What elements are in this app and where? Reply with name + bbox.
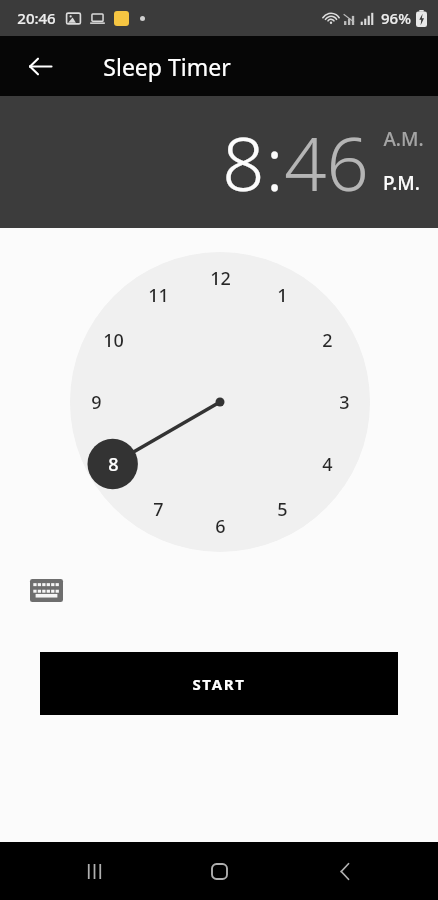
staticText: START: [192, 674, 246, 694]
staticText: 2: [322, 328, 333, 353]
staticText: 8: [222, 112, 265, 213]
staticText: 6: [215, 514, 226, 539]
button[interactable]: Home: [187, 842, 251, 900]
staticText: 8: [108, 452, 119, 477]
staticText: P.M.: [383, 170, 420, 196]
staticText: :: [265, 112, 284, 213]
button[interactable]: P.M.: [382, 167, 421, 199]
staticText: 11: [148, 283, 169, 308]
staticText: 3: [339, 390, 350, 415]
staticText: 96%: [381, 8, 411, 28]
staticText: 12: [210, 266, 231, 291]
staticText: 5: [277, 497, 288, 522]
staticText: 4: [322, 452, 333, 477]
staticText: A.M.: [383, 126, 424, 152]
staticText: 10: [103, 328, 124, 353]
staticText: Sleep Timer: [103, 51, 231, 82]
button[interactable]: Select hour: [70, 252, 370, 552]
staticText: 9: [91, 390, 102, 415]
button[interactable]: Navigate up: [17, 43, 63, 89]
button[interactable]: 8: [222, 112, 265, 213]
button[interactable]: Recent apps: [62, 842, 126, 900]
button[interactable]: Switch to text input mode: [24, 572, 68, 608]
button[interactable]: START: [40, 652, 398, 715]
button[interactable]: Back: [313, 842, 377, 900]
staticText: 7: [153, 497, 164, 522]
button[interactable]: A.M.: [382, 123, 425, 155]
staticText: 1: [277, 283, 288, 308]
staticText: 20:46: [17, 8, 56, 28]
button[interactable]: 46: [284, 112, 369, 213]
staticText: 46: [284, 112, 369, 213]
